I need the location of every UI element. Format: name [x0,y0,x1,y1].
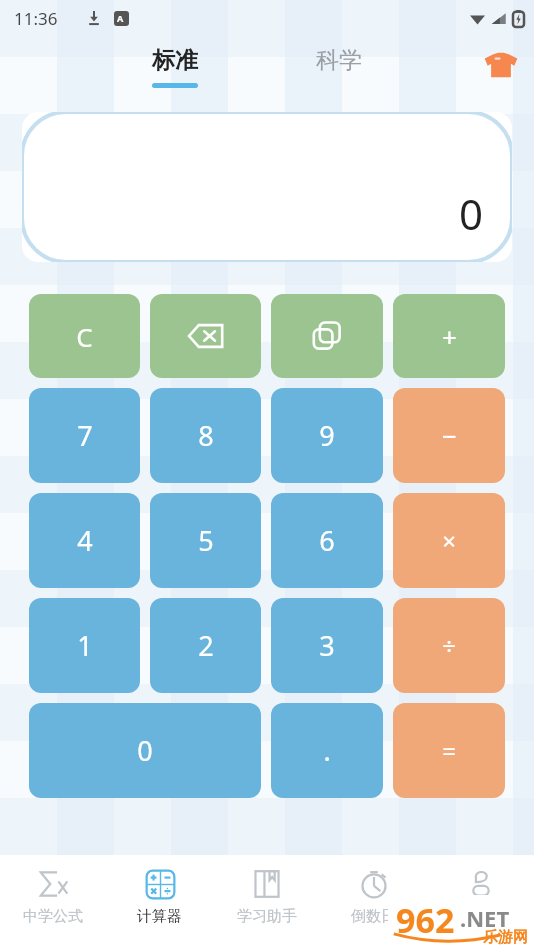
button[interactable]: Minus [393,388,505,483]
staticText: 我的 [466,907,496,926]
button[interactable]: 4 [29,493,140,588]
button[interactable]: 7 [29,388,140,483]
staticText: 8 [198,417,214,454]
button[interactable]: 学习助手 [213,855,320,949]
staticText: . [323,732,331,769]
button[interactable]: 中学公式 [0,855,106,949]
staticText: 中学公式 [23,907,83,926]
staticText: + [442,319,457,354]
staticText: 9 [319,417,335,454]
staticText: C [76,319,93,354]
staticText: 962 [396,897,455,943]
staticText: 5 [198,522,214,559]
button[interactable]: 1 [29,598,140,693]
button[interactable]: 我的 [427,855,534,949]
staticText: 倒数日 [351,907,396,926]
staticText: 3 [319,627,335,664]
button[interactable]: Backspace [150,294,261,378]
staticText: 1 [77,627,93,664]
staticText: ÷ [442,629,456,662]
button[interactable]: 3 [271,598,383,693]
button[interactable]: 0 [22,112,512,262]
staticText: 学习助手 [237,907,297,926]
button[interactable]: 倒数日 [320,855,427,949]
staticText: × [442,524,456,557]
button[interactable]: . [271,703,383,798]
staticText: 4 [77,522,93,559]
staticText: 11:36 [14,7,58,30]
staticText: 6 [319,522,335,559]
button[interactable]: 0 [29,703,261,798]
staticText: − [442,418,457,453]
button[interactable]: Divide [393,598,505,693]
staticText: 2 [198,627,214,664]
button[interactable]: Equals [393,703,505,798]
button[interactable]: 计算器 [106,855,213,949]
staticText: .NET [460,903,510,933]
button[interactable]: Clear [29,294,140,378]
staticText: 计算器 [137,907,182,926]
button[interactable]: Plus [393,294,505,378]
button[interactable]: 标准 [152,46,198,88]
button[interactable]: Copy [271,294,383,378]
staticText: 7 [77,417,93,454]
button[interactable]: 8 [150,388,261,483]
button[interactable]: Theme [482,46,520,84]
staticText: 0 [137,732,153,769]
staticText: = [442,734,456,767]
button[interactable]: Multiply [393,493,505,588]
button[interactable]: 9 [271,388,383,483]
staticText: A [117,12,124,24]
staticText: 标准 [152,46,198,75]
staticText: 0 [459,185,484,242]
button[interactable]: 5 [150,493,261,588]
button[interactable]: 6 [271,493,383,588]
button[interactable]: 科学 [316,46,362,75]
staticText: 科学 [316,46,362,75]
button[interactable]: 2 [150,598,261,693]
staticText: 乐游网 [483,928,528,947]
